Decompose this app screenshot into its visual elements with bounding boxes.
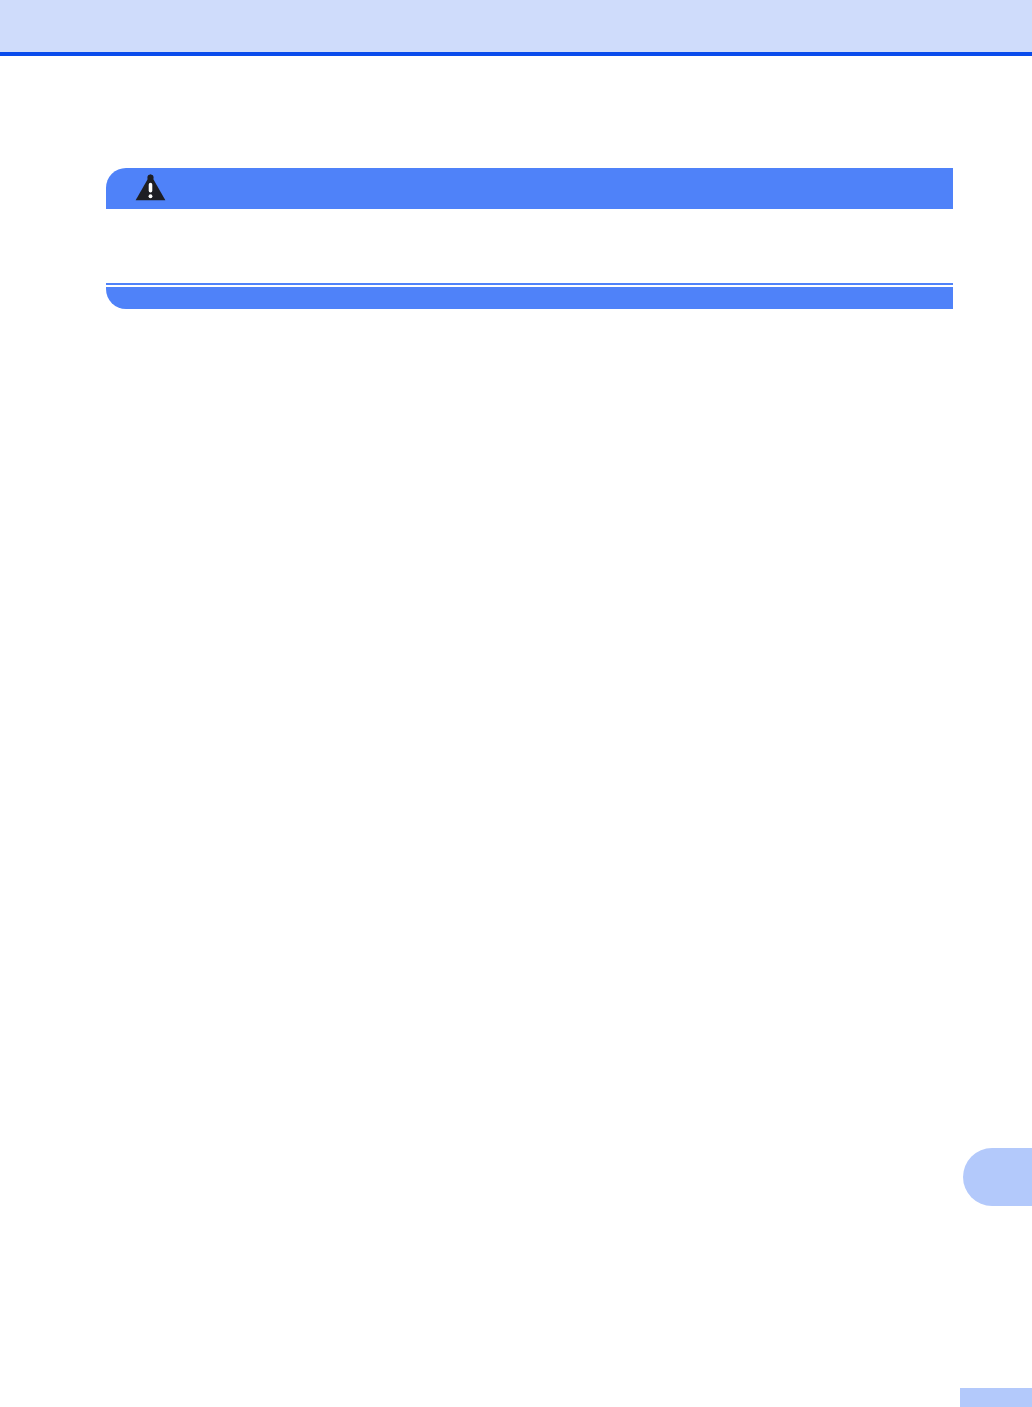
button[interactable]: Warning bbox=[106, 168, 953, 209]
button[interactable] bbox=[106, 287, 953, 309]
button[interactable]: Section tab bbox=[963, 1148, 1032, 1206]
other: Warning bbox=[135, 173, 166, 202]
